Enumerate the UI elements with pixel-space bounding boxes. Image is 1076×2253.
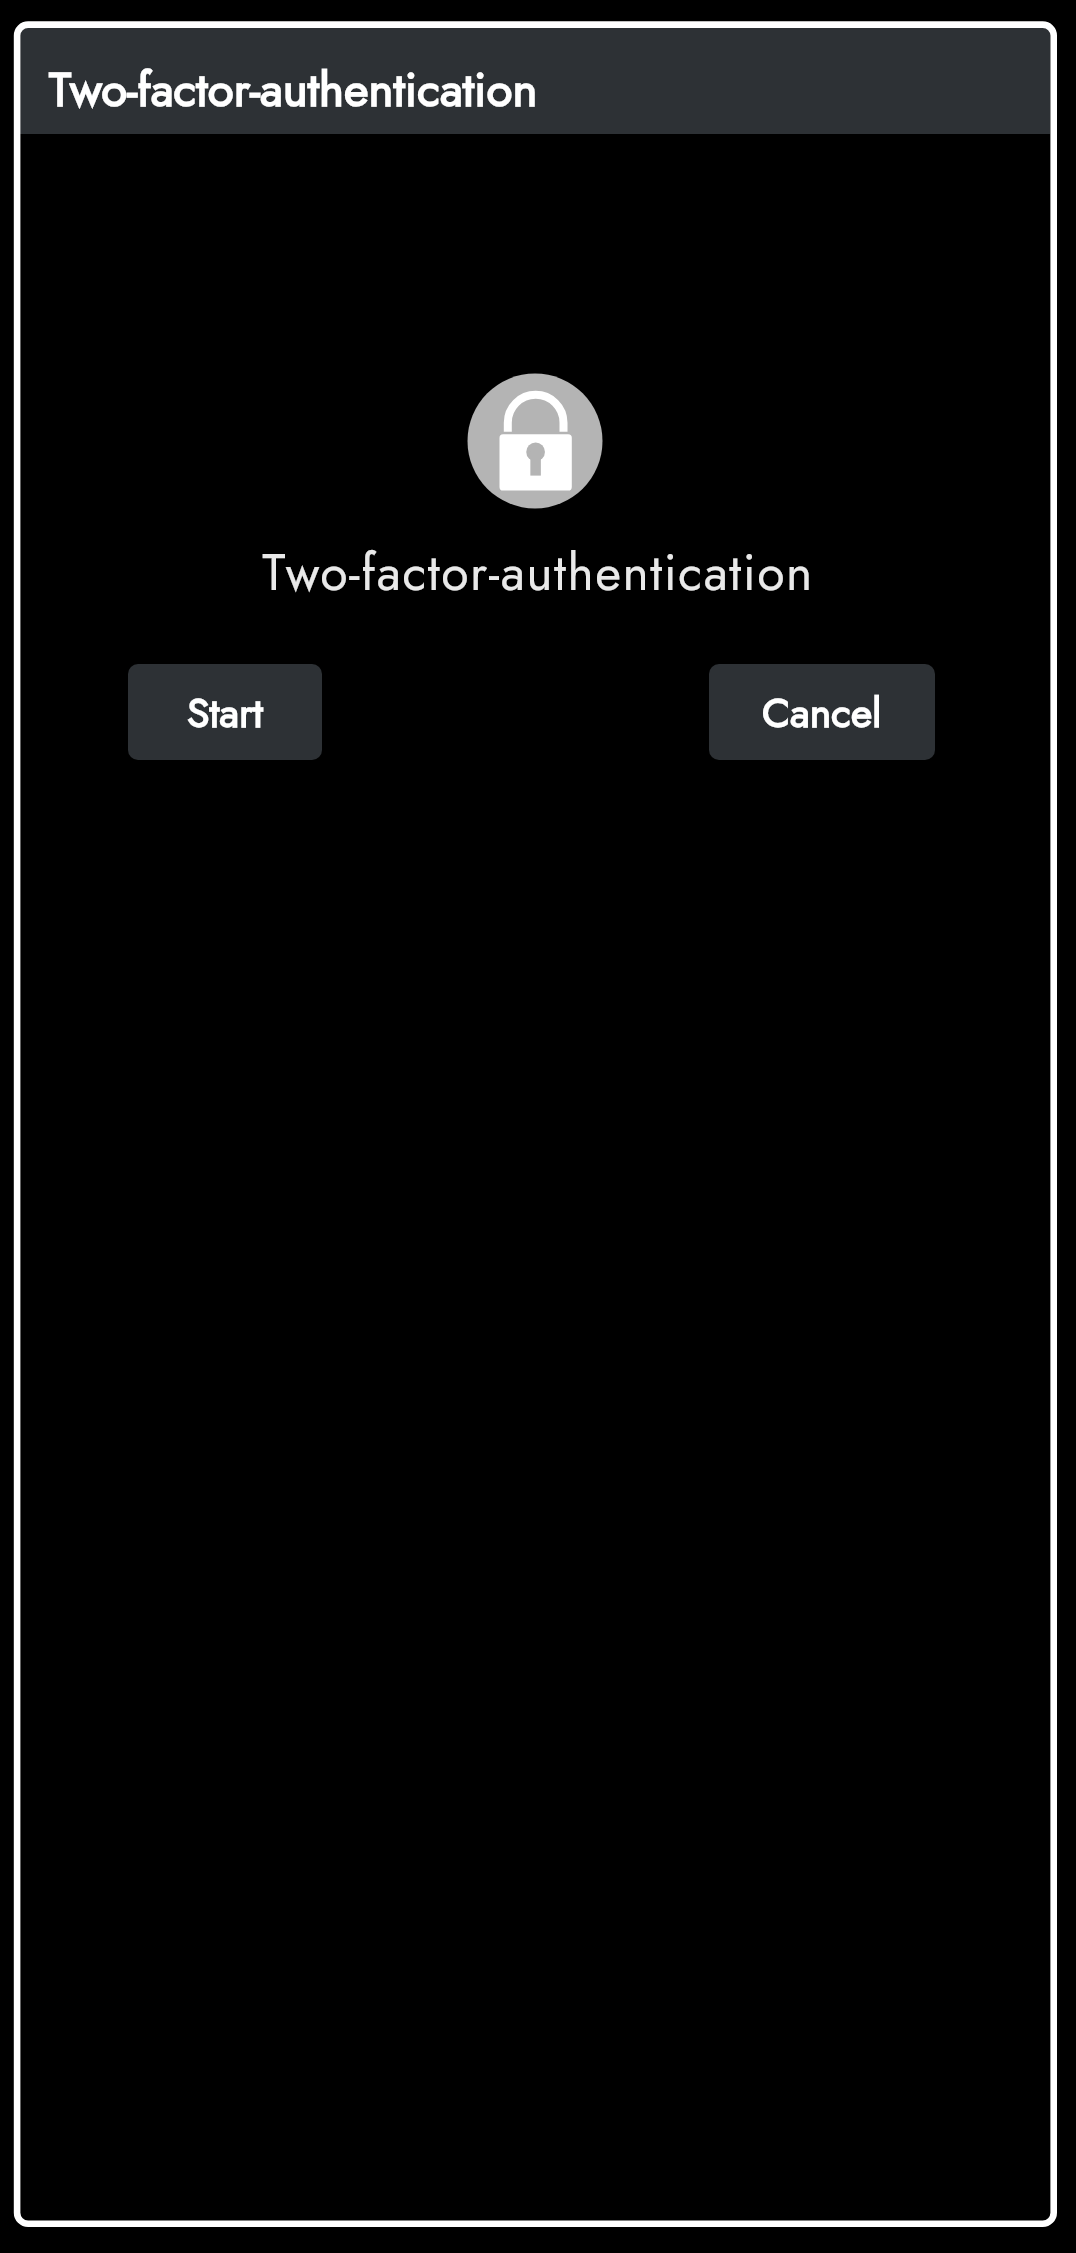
other: Two-factor authentication lock bbox=[455, 361, 615, 521]
button[interactable]: Cancel bbox=[709, 664, 935, 760]
staticText: Start bbox=[187, 683, 263, 742]
staticText: Two-factor-authentication bbox=[49, 55, 538, 124]
button[interactable]: Start bbox=[128, 664, 322, 760]
staticText: Cancel bbox=[762, 683, 882, 742]
staticText: Two-factor-authentication bbox=[23, 536, 1050, 608]
button[interactable]: Two-factor-authentication bbox=[20, 28, 1050, 134]
